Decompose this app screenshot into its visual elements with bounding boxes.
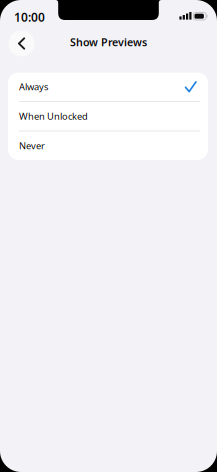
- staticText: Always: [19, 81, 48, 93]
- staticText: 10:00: [14, 9, 45, 25]
- staticText: Show Previews: [70, 35, 147, 49]
- button[interactable]: Always: [8, 72, 208, 101]
- button[interactable]: When Unlocked: [8, 102, 208, 130]
- button[interactable]: Back: [8, 30, 34, 56]
- staticText: When Unlocked: [19, 110, 88, 122]
- button[interactable]: Never: [8, 131, 208, 160]
- staticText: Never: [19, 140, 45, 152]
